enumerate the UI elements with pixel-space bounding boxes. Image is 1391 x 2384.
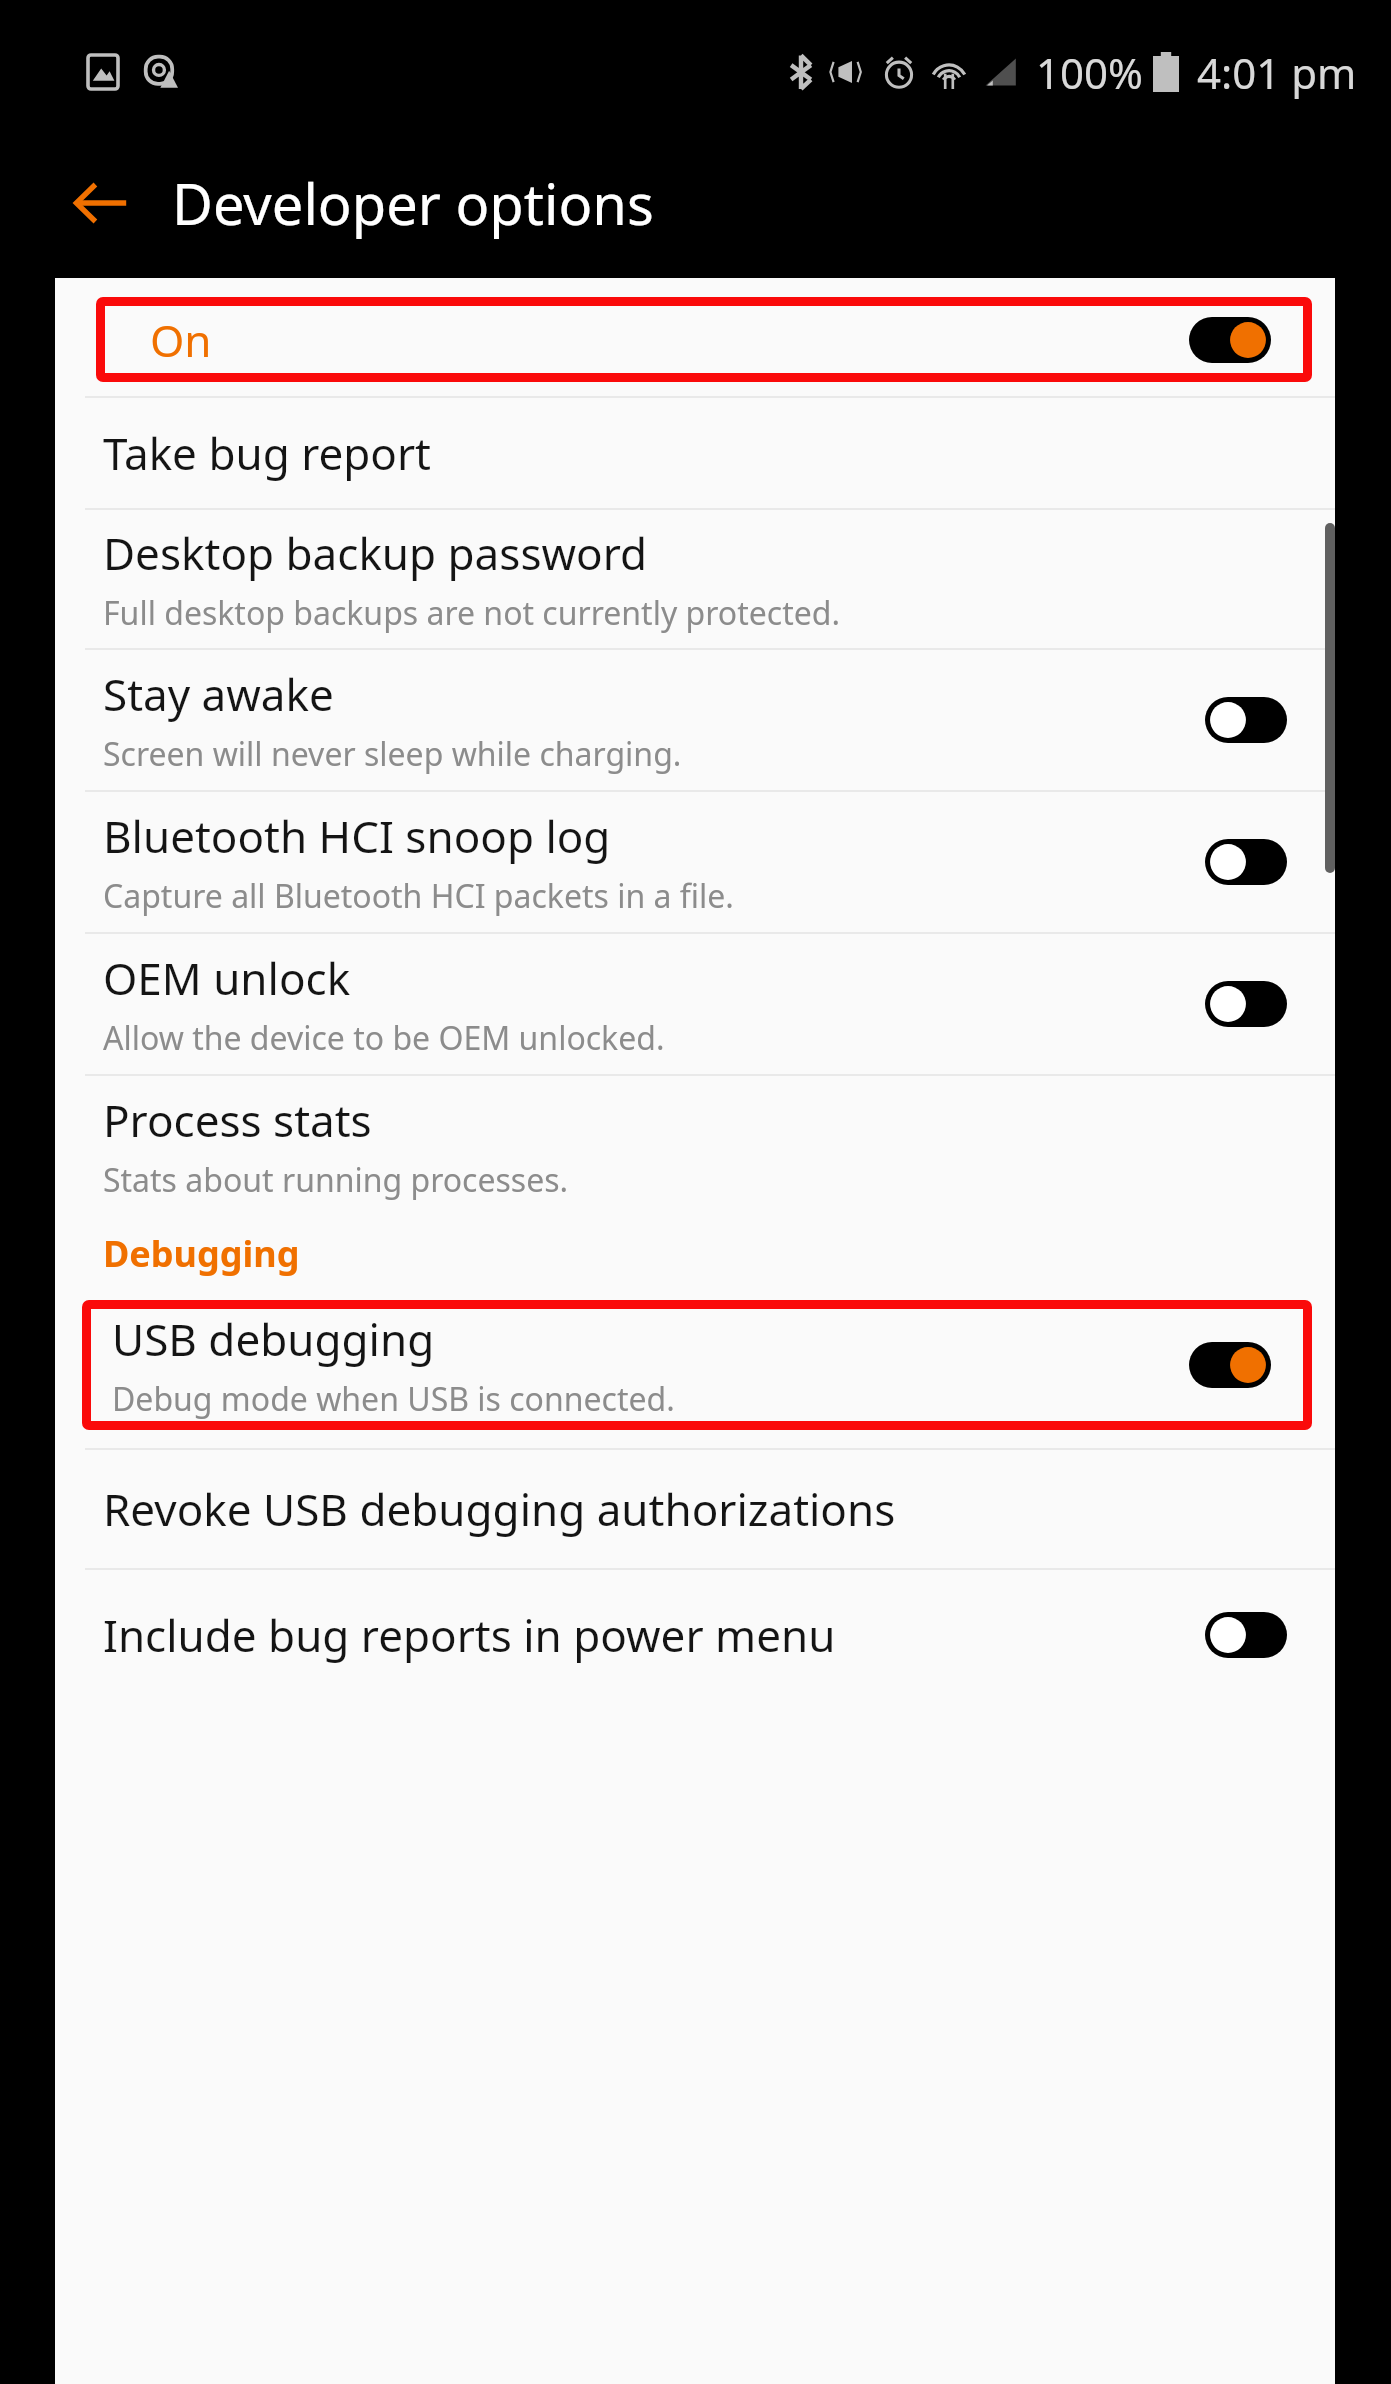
- staticText: On: [150, 310, 212, 370]
- staticText: Stats about running processes.: [103, 1158, 569, 1202]
- button[interactable]: Revoke USB debugging authorizations: [55, 1450, 1335, 1568]
- staticText: Debugging: [103, 1229, 300, 1278]
- button[interactable]: OEM unlock: [55, 934, 1335, 1074]
- staticText: Developer options: [172, 165, 654, 241]
- staticText: Process stats: [103, 1090, 372, 1150]
- staticText: Capture all Bluetooth HCI packets in a f…: [103, 874, 734, 918]
- button[interactable]: Include bug reports in power menu: [55, 1570, 1335, 1700]
- staticText: Include bug reports in power menu: [103, 1605, 836, 1665]
- staticText: USB debugging: [112, 1309, 435, 1369]
- staticText: Bluetooth HCI snoop log: [103, 806, 611, 866]
- button[interactable]: Back: [62, 164, 140, 242]
- button[interactable]: Process stats: [55, 1076, 1335, 1216]
- staticText: Stay awake: [103, 664, 334, 724]
- button[interactable]: On: [105, 306, 1303, 373]
- staticText: Revoke USB debugging authorizations: [103, 1479, 896, 1539]
- staticText: Take bug report: [103, 423, 431, 483]
- staticText: 100%: [1036, 44, 1143, 101]
- button[interactable]: Desktop backup password: [55, 510, 1335, 648]
- staticText: OEM unlock: [103, 948, 351, 1008]
- staticText: Full desktop backups are not currently p…: [103, 591, 840, 635]
- staticText: Screen will never sleep while charging.: [103, 732, 682, 776]
- staticText: Debug mode when USB is connected.: [112, 1377, 675, 1421]
- staticText: 4:01 pm: [1197, 44, 1357, 101]
- button[interactable]: USB debugging: [91, 1309, 1303, 1421]
- button[interactable]: Stay awake: [55, 650, 1335, 790]
- staticText: Desktop backup password: [103, 523, 648, 583]
- button[interactable]: Bluetooth HCI snoop log: [55, 792, 1335, 932]
- staticText: Allow the device to be OEM unlocked.: [103, 1016, 665, 1060]
- button[interactable]: Take bug report: [55, 398, 1335, 508]
